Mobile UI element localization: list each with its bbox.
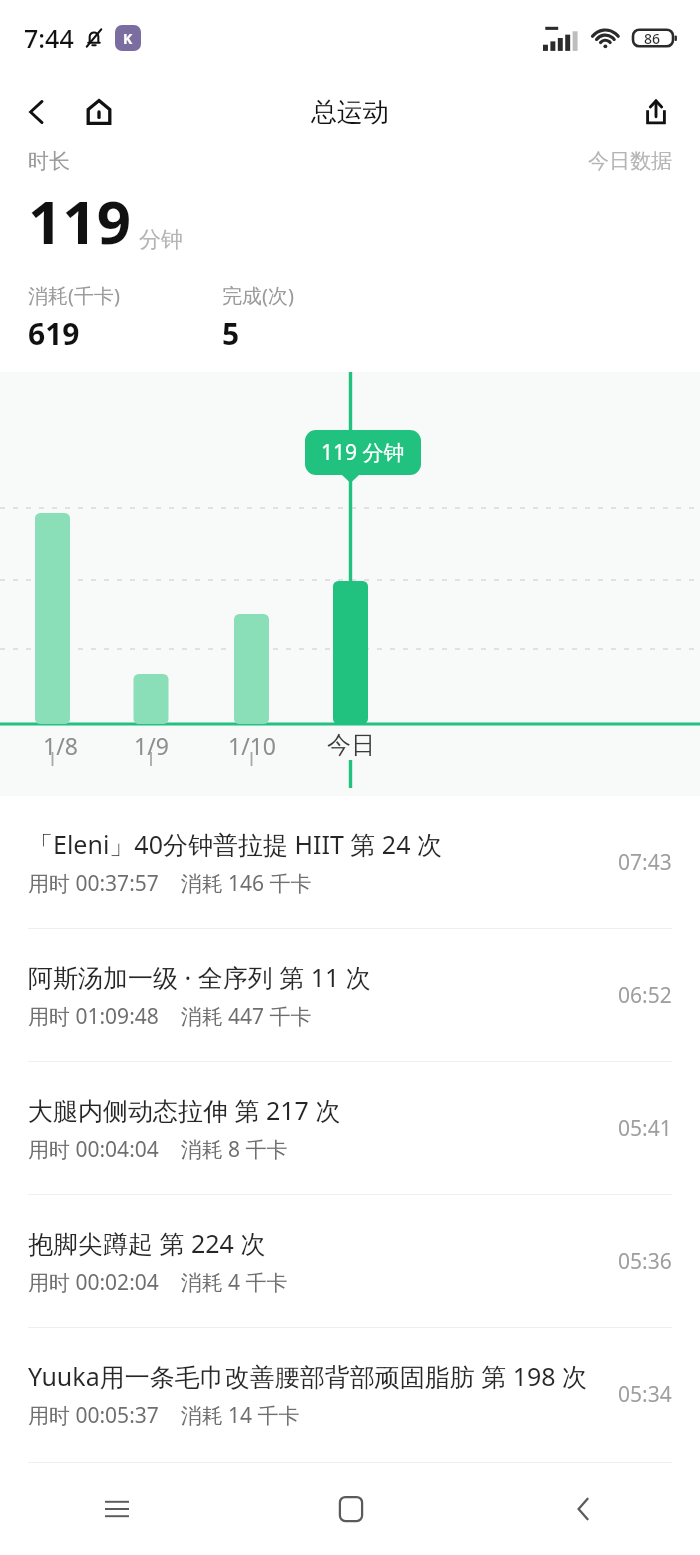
button[interactable]: 今日 [291,730,411,760]
button[interactable]: Share [626,82,686,142]
staticText: 用时 00:04:04 消耗 8 千卡 [28,1135,288,1164]
staticText: 05:34 [618,1380,672,1409]
button[interactable]: 1/9 [91,730,211,761]
button[interactable]: 今日数据 [588,148,672,174]
staticText: 消耗(千卡) [28,282,120,309]
staticText: 分钟 [139,226,183,254]
staticText: 今日 [327,730,375,760]
staticText: 05:36 [618,1247,672,1276]
staticText: 大腿内侧动态拉伸 第 217 次 [28,1093,341,1127]
staticText: 用时 00:05:37 消耗 14 千卡 [28,1401,300,1430]
staticText: 阿斯汤加一级 · 全序列 第 11 次 [28,960,371,994]
button[interactable]: Yuuka用一条毛巾改善腰部背部顽固脂肪 第 198 次 [0,1328,700,1460]
button[interactable]: Home [68,81,130,143]
staticText: 总运动 [311,96,389,129]
button[interactable]: 抱脚尖蹲起 第 224 次 [0,1195,700,1327]
staticText: 05:41 [618,1114,672,1143]
staticText: 7:44 [24,21,74,55]
button[interactable]: 「Eleni」40分钟普拉提 HIIT 第 24 次 [0,796,700,928]
button[interactable]: Recents [0,1463,234,1555]
staticText: 06:52 [618,981,672,1010]
staticText: 619 [28,313,80,354]
button[interactable]: Back [467,1463,700,1555]
staticText: Yuuka用一条毛巾改善腰部背部顽固脂肪 第 198 次 [28,1359,588,1393]
staticText: 119 分钟 [321,438,405,467]
staticText: 抱脚尖蹲起 第 224 次 [28,1226,266,1260]
staticText: 119 [28,180,131,262]
button[interactable]: 大腿内侧动态拉伸 第 217 次 [0,1062,700,1194]
staticText: 1/8 [43,730,78,761]
button[interactable]: Back [6,81,68,143]
staticText: 用时 00:37:57 消耗 146 千卡 [28,869,312,898]
staticText: 时长 [28,148,70,174]
staticText: 1/10 [228,730,277,761]
staticText: K [123,29,133,48]
staticText: 「Eleni」40分钟普拉提 HIIT 第 24 次 [28,827,442,861]
button[interactable]: 阿斯汤加一级 · 全序列 第 11 次 [0,929,700,1061]
button[interactable]: 1/10 [192,730,312,761]
staticText: 用时 00:02:04 消耗 4 千卡 [28,1268,288,1297]
button[interactable]: 1/8 [0,730,120,761]
staticText: 完成(次) [222,282,294,309]
button[interactable]: Home [234,1463,467,1555]
staticText: 1/9 [134,730,169,761]
staticText: 5 [222,313,240,354]
staticText: 86 [644,29,661,48]
staticText: 07:43 [618,848,672,877]
staticText: 用时 01:09:48 消耗 447 千卡 [28,1002,312,1031]
